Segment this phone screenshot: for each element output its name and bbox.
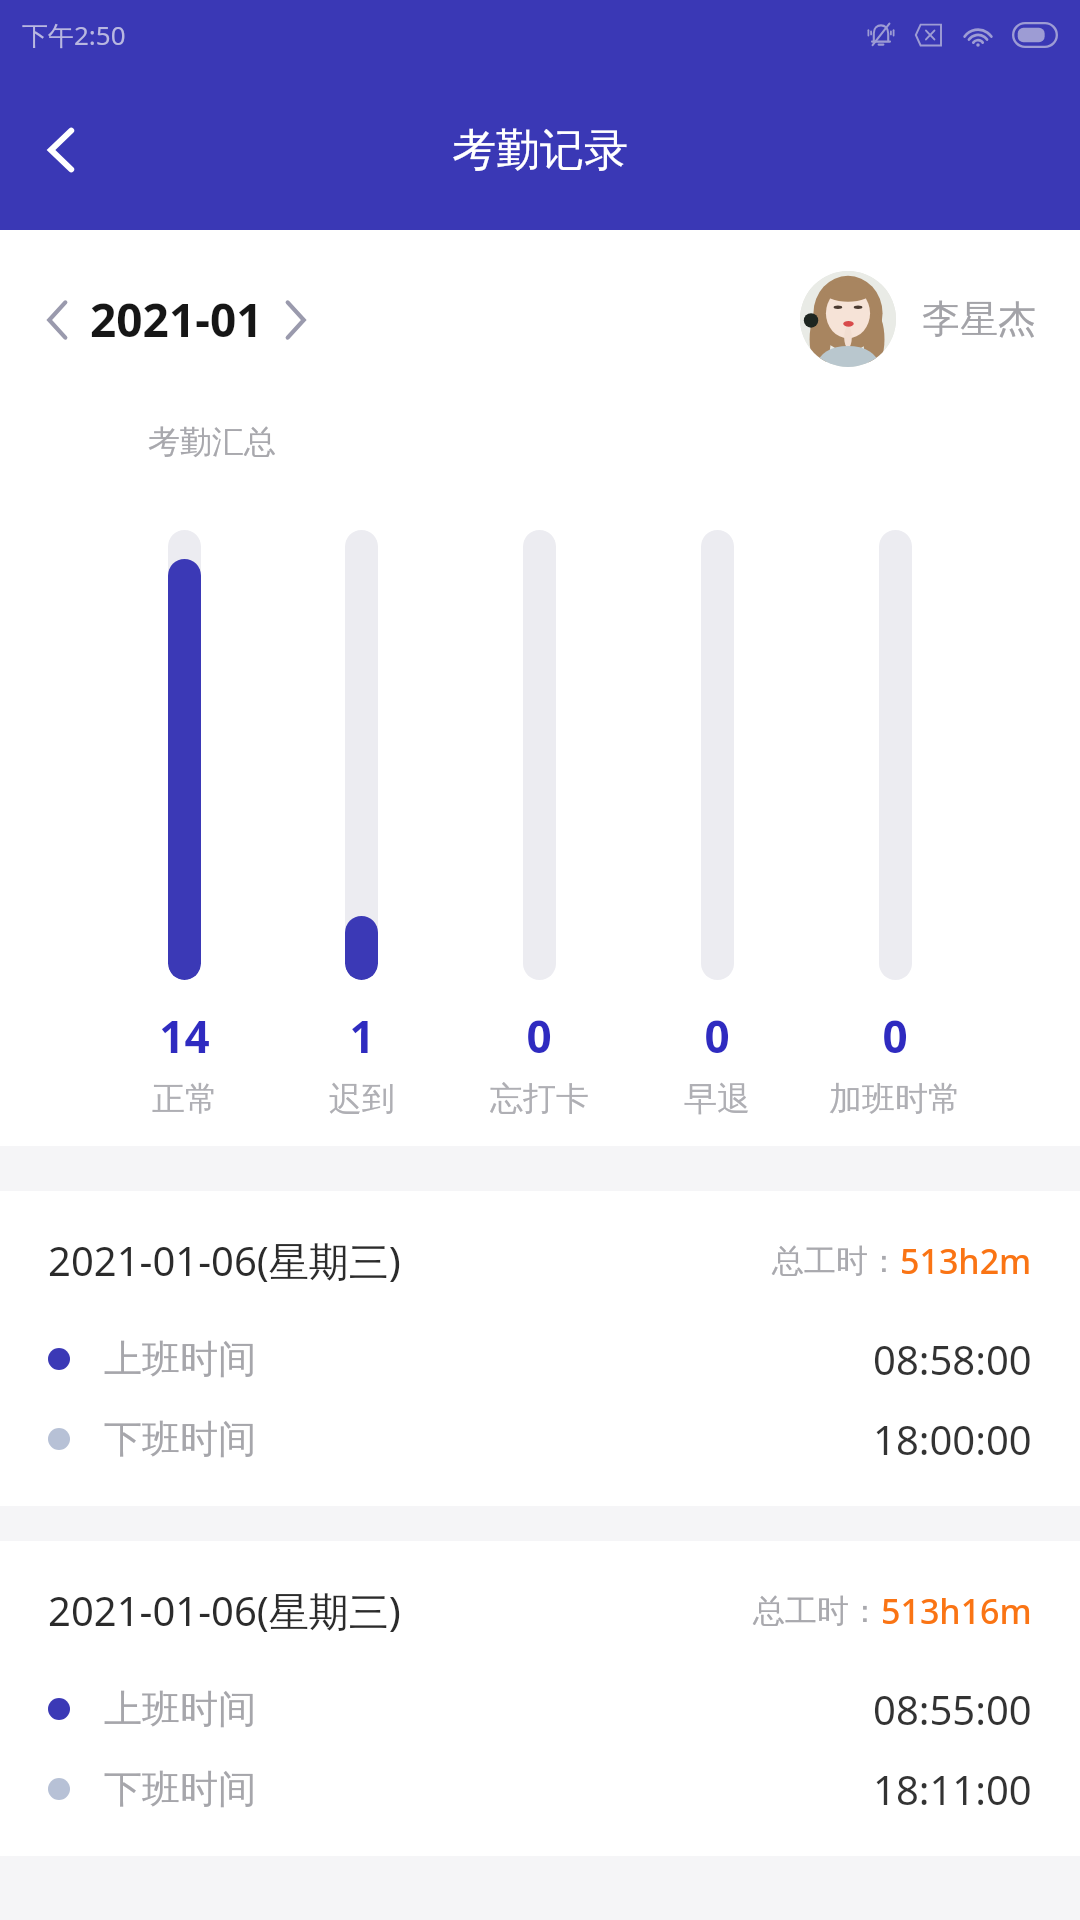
staticText: 0	[882, 1006, 908, 1066]
staticText: 考勤记录	[452, 123, 628, 178]
staticText: 14	[159, 1006, 210, 1066]
button[interactable]: 2021-01-06(星期三)	[0, 1191, 1080, 1506]
staticText: 1	[349, 1006, 375, 1066]
staticText: 忘打卡	[490, 1078, 589, 1120]
staticText: 总工时：	[753, 1591, 881, 1631]
staticText: 0	[526, 1006, 552, 1066]
staticText: 2021-01	[90, 288, 263, 351]
staticText: 0	[704, 1006, 730, 1066]
staticText: 上班时间	[104, 1335, 256, 1383]
staticText: 早退	[684, 1078, 750, 1120]
staticText: 08:55:00	[873, 1682, 1032, 1736]
staticText: 迟到	[329, 1078, 395, 1120]
staticText: 18:00:00	[873, 1412, 1032, 1466]
staticText: 513h16m	[881, 1588, 1032, 1634]
staticText: 李星杰	[922, 295, 1036, 343]
staticText: 08:58:00	[873, 1332, 1032, 1386]
staticText: 考勤汇总	[148, 422, 276, 462]
staticText: 下班时间	[104, 1765, 256, 1813]
button[interactable]: 李星杰	[800, 271, 1036, 367]
staticText: 加班时常	[829, 1078, 961, 1120]
staticText: 2021-01-06(星期三)	[48, 1583, 401, 1638]
button[interactable]: 2021-01	[44, 288, 309, 351]
staticText: 总工时：	[772, 1241, 900, 1281]
button[interactable]: 返回	[22, 110, 102, 190]
staticText: 2021-01-06(星期三)	[48, 1233, 401, 1288]
staticText: 下班时间	[104, 1415, 256, 1463]
staticText: 正常	[152, 1078, 218, 1120]
staticText: 下午2:50	[22, 17, 126, 53]
button[interactable]: 2021-01-06(星期三)	[0, 1541, 1080, 1856]
staticText: 上班时间	[104, 1685, 256, 1733]
staticText: 18:11:00	[873, 1762, 1032, 1816]
staticText: 513h2m	[900, 1238, 1032, 1284]
